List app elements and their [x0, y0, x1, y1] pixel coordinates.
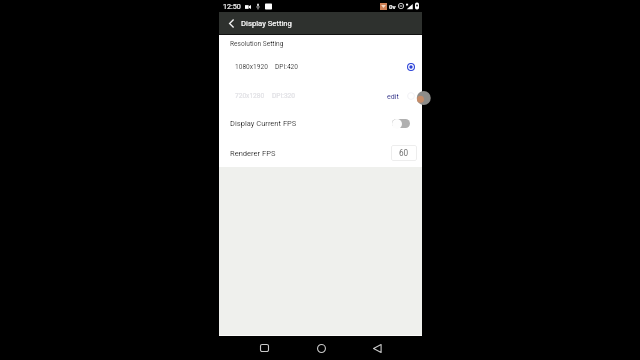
button[interactable]: Recent apps: [252, 336, 276, 360]
staticText: DPI:420: [275, 63, 298, 71]
staticText: Display Setting: [241, 19, 292, 28]
staticText: Display Current FPS: [230, 119, 297, 128]
staticText: 0v: [389, 3, 396, 10]
staticText: 12:50: [223, 2, 241, 10]
button[interactable]: Display Current FPS toggle: [392, 118, 410, 129]
button[interactable]: 720x1280: [219, 82, 422, 110]
button[interactable]: 60: [391, 145, 417, 161]
button[interactable]: Back: [219, 12, 241, 34]
button[interactable]: Renderer FPS: [219, 139, 422, 167]
staticText: DPI:320: [272, 92, 295, 100]
staticText: 1080x1920: [235, 63, 268, 71]
staticText: 60: [399, 148, 409, 158]
button[interactable]: 1080x1920: [219, 53, 422, 81]
button[interactable]: Back: [365, 336, 389, 360]
button[interactable]: Floating overlay: [415, 91, 422, 105]
staticText: 720x1280: [235, 92, 265, 100]
staticText: Resolution Setting: [230, 40, 284, 48]
button[interactable]: Home: [309, 336, 333, 360]
button[interactable]: edit: [386, 88, 402, 104]
button[interactable]: Display Current FPS: [219, 109, 422, 138]
staticText: Renderer FPS: [230, 149, 276, 158]
staticText: edit: [387, 92, 399, 100]
